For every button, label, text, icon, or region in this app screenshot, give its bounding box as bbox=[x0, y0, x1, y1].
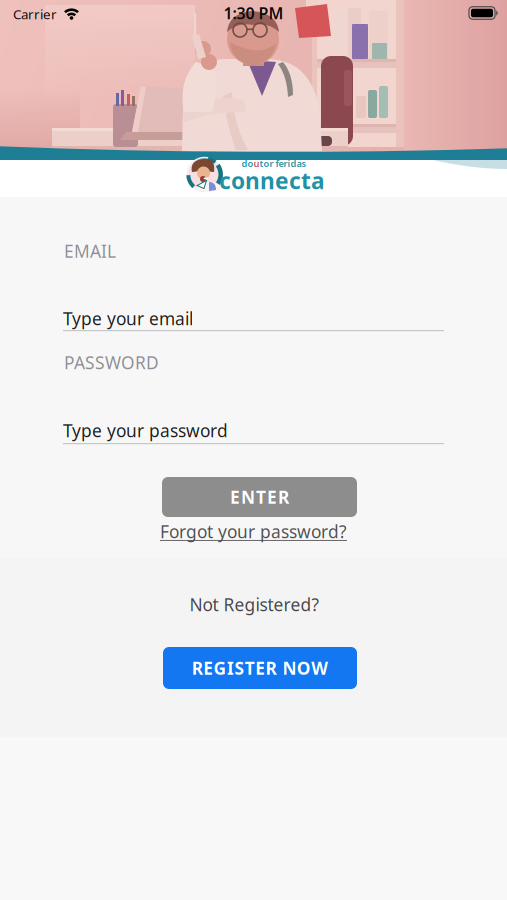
button[interactable]: ENTER bbox=[162, 477, 357, 517]
staticText: Forgot your password? bbox=[160, 520, 347, 543]
button[interactable]: Type your password bbox=[0, 416, 507, 446]
staticText: Type your password bbox=[63, 419, 228, 442]
staticText: ENTER bbox=[230, 485, 289, 508]
staticText: 1:30 PM bbox=[223, 2, 283, 24]
staticText: Carrier bbox=[13, 5, 57, 23]
staticText: do bbox=[241, 157, 253, 170]
button[interactable]: REGISTER NOW bbox=[163, 647, 357, 689]
staticText: PASSWORD bbox=[64, 351, 159, 374]
staticText: connecta bbox=[219, 165, 325, 195]
staticText: Not Registered? bbox=[189, 593, 319, 616]
staticText: Type your email bbox=[63, 307, 193, 330]
staticText: EMAIL bbox=[64, 239, 116, 262]
button[interactable]: Forgot your password? bbox=[160, 520, 347, 543]
staticText: tor feridas bbox=[259, 157, 306, 170]
staticText: REGISTER NOW bbox=[192, 656, 328, 679]
button[interactable]: Type your email bbox=[0, 304, 507, 334]
staticText: u bbox=[253, 157, 259, 170]
